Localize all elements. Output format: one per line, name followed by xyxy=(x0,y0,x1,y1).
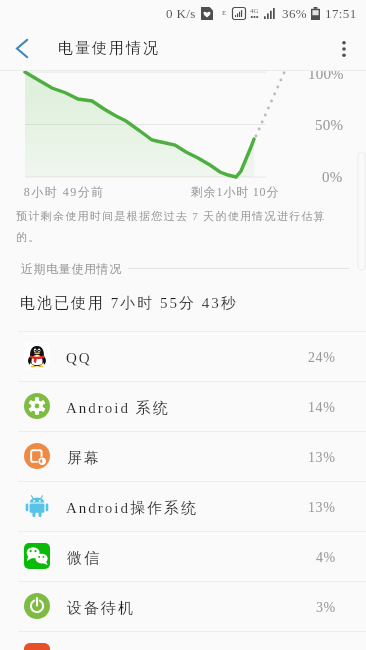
button[interactable]: 设备待机 xyxy=(0,581,366,631)
button[interactable]: 微信 xyxy=(0,531,366,581)
staticText: 13% xyxy=(308,450,336,466)
staticText: 24% xyxy=(308,350,336,366)
button[interactable]: Android 系统 xyxy=(0,381,366,431)
staticText: 8小时 49分前 xyxy=(23,184,104,199)
button[interactable] xyxy=(0,631,366,650)
staticText: 4% xyxy=(316,550,336,566)
button[interactable]: Back xyxy=(0,26,44,71)
staticText: 设备待机 xyxy=(66,599,134,618)
staticText: 电量使用情况 xyxy=(57,39,159,58)
staticText: 预计剩余使用时间是根据您过去 7 天的使用情况进行估算 的。 xyxy=(16,209,327,245)
staticText: 14% xyxy=(308,400,336,416)
staticText: 电池已使用 7小时 55分 43秒 xyxy=(20,294,238,313)
staticText: 0% xyxy=(322,169,343,182)
button[interactable]: More options xyxy=(322,26,366,71)
staticText: 近期电量使用情况 xyxy=(21,261,122,276)
staticText: 3% xyxy=(316,600,336,616)
staticText: E xyxy=(222,9,227,17)
button[interactable]: Android操作系统 xyxy=(0,481,366,531)
staticText: 剩余1小时 10分 xyxy=(191,184,280,199)
staticText: 36% xyxy=(282,6,308,20)
staticText: 0 K/s xyxy=(166,6,196,20)
staticText: Android 系统 xyxy=(66,399,170,418)
staticText: 13% xyxy=(308,500,336,516)
staticText: QQ xyxy=(66,350,92,367)
button[interactable]: QQ xyxy=(0,331,366,381)
staticText: 17:51 xyxy=(325,6,357,20)
staticText: 屏幕 xyxy=(66,449,100,468)
staticText: 100% xyxy=(308,71,344,83)
button[interactable]: 屏幕 xyxy=(0,431,366,481)
staticText: 微信 xyxy=(66,549,100,568)
staticText: 4G xyxy=(250,7,259,15)
staticText: 50% xyxy=(315,117,344,134)
staticText: Android操作系统 xyxy=(66,499,198,518)
